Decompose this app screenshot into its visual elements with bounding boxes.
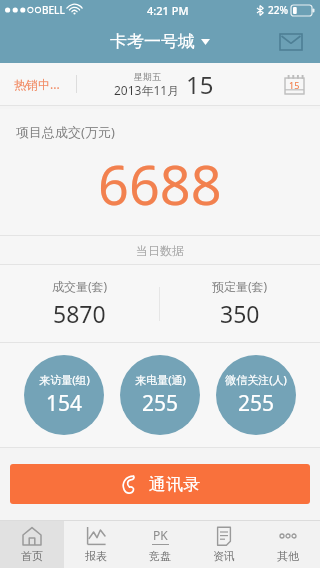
staticText: 350 [220, 298, 260, 329]
button[interactable]: 热销中... [14, 76, 60, 92]
staticText: 当日数据 [136, 243, 184, 258]
button[interactable]: 成交量(套) [0, 265, 159, 342]
staticText: 5870 [53, 298, 106, 329]
staticText: 来访量(组) [39, 372, 90, 387]
staticText: 来电量(通) [135, 372, 186, 387]
staticText: 星期五 [134, 71, 161, 82]
staticText: 成交量(套) [52, 278, 108, 294]
staticText: 报表 [85, 549, 107, 563]
staticText: 卡考一号城 [110, 31, 195, 52]
staticText: 其他 [277, 549, 299, 563]
staticText: 项目总成交(万元) [16, 123, 115, 141]
staticText: 热销中... [14, 76, 60, 92]
staticText: 154 [46, 389, 83, 418]
staticText: BELL [42, 3, 65, 17]
staticText: 15 [289, 79, 300, 91]
button[interactable]: 卡考一号城 [110, 31, 210, 52]
button[interactable]: 资讯 [192, 521, 256, 568]
staticText: 4:21 PM [147, 3, 189, 18]
button[interactable]: PK [128, 521, 192, 568]
button[interactable]: 来访量(组) [24, 355, 104, 435]
button[interactable]: Calendar [280, 70, 308, 98]
button[interactable]: 首页 [0, 521, 64, 568]
staticText: 资讯 [213, 549, 235, 563]
button[interactable]: 来电量(通) [120, 355, 200, 435]
staticText: 竞盘 [149, 549, 171, 563]
button[interactable]: 通讯录 [10, 464, 310, 504]
button[interactable]: 微信关注(人) [216, 355, 296, 435]
button[interactable]: 预定量(套) [160, 265, 320, 342]
button[interactable]: 报表 [64, 521, 128, 568]
staticText: 15 [186, 68, 214, 101]
staticText: 预定量(套) [212, 278, 268, 294]
staticText: 6688 [98, 147, 222, 221]
staticText: 微信关注(人) [225, 372, 287, 387]
staticText: 首页 [21, 549, 43, 563]
staticText: 2013年11月 [114, 82, 180, 98]
staticText: PK [153, 527, 168, 543]
button[interactable]: Messages [274, 25, 308, 59]
staticText: 22% [268, 3, 288, 17]
button[interactable]: 其他 [256, 521, 320, 568]
staticText: 255 [142, 389, 179, 418]
staticText: 255 [238, 389, 275, 418]
staticText: 通讯录 [149, 474, 200, 495]
